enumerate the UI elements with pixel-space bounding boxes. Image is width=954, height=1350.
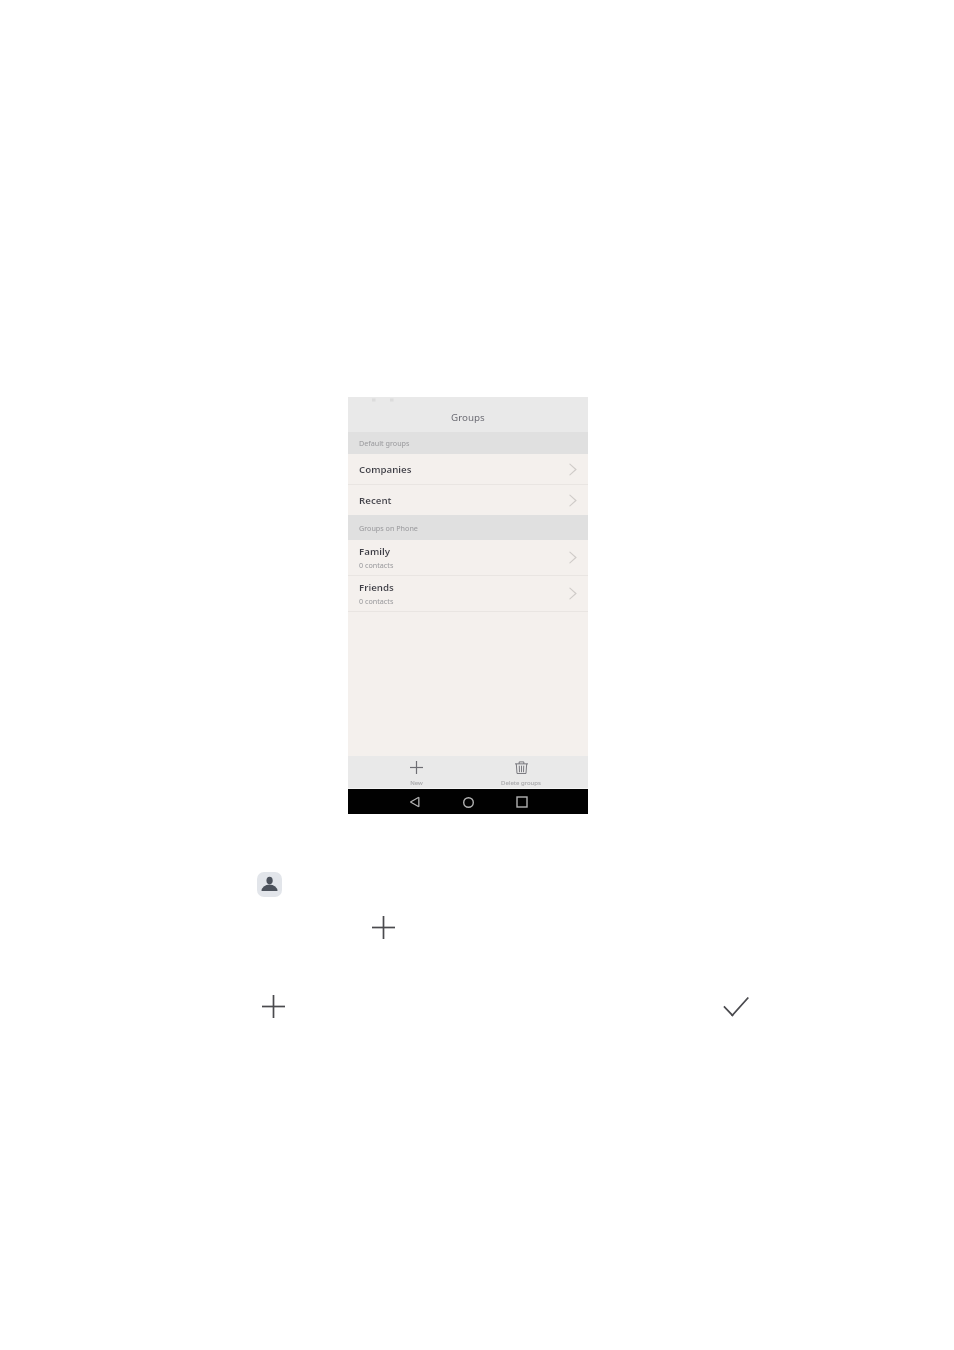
button[interactable]: Companies (348, 454, 588, 484)
staticText: Delete groups (501, 779, 541, 787)
staticText: New (410, 779, 423, 787)
button[interactable]: Recents (510, 791, 534, 813)
button[interactable]: Back (403, 791, 427, 813)
staticText: Friends (359, 581, 394, 594)
button[interactable]: Add (367, 911, 399, 943)
button[interactable]: Add (257, 990, 289, 1022)
button[interactable]: Contact (257, 872, 282, 897)
staticText: Companies (359, 463, 412, 476)
staticText: Groups on Phone (359, 523, 418, 533)
button[interactable]: Recent (348, 485, 588, 515)
staticText: 0 contacts (359, 560, 394, 570)
staticText: Groups (451, 411, 485, 424)
button[interactable]: Home (456, 791, 480, 813)
staticText: 0 contacts (359, 596, 394, 606)
staticText: Default groups (359, 438, 410, 448)
staticText: Family (359, 545, 390, 558)
staticText: Recent (359, 494, 392, 507)
button[interactable]: Done (719, 990, 753, 1024)
button[interactable]: Friends (348, 576, 588, 611)
button[interactable]: New (371, 756, 461, 788)
button[interactable]: Family (348, 540, 588, 575)
button[interactable]: Delete groups (476, 756, 566, 788)
